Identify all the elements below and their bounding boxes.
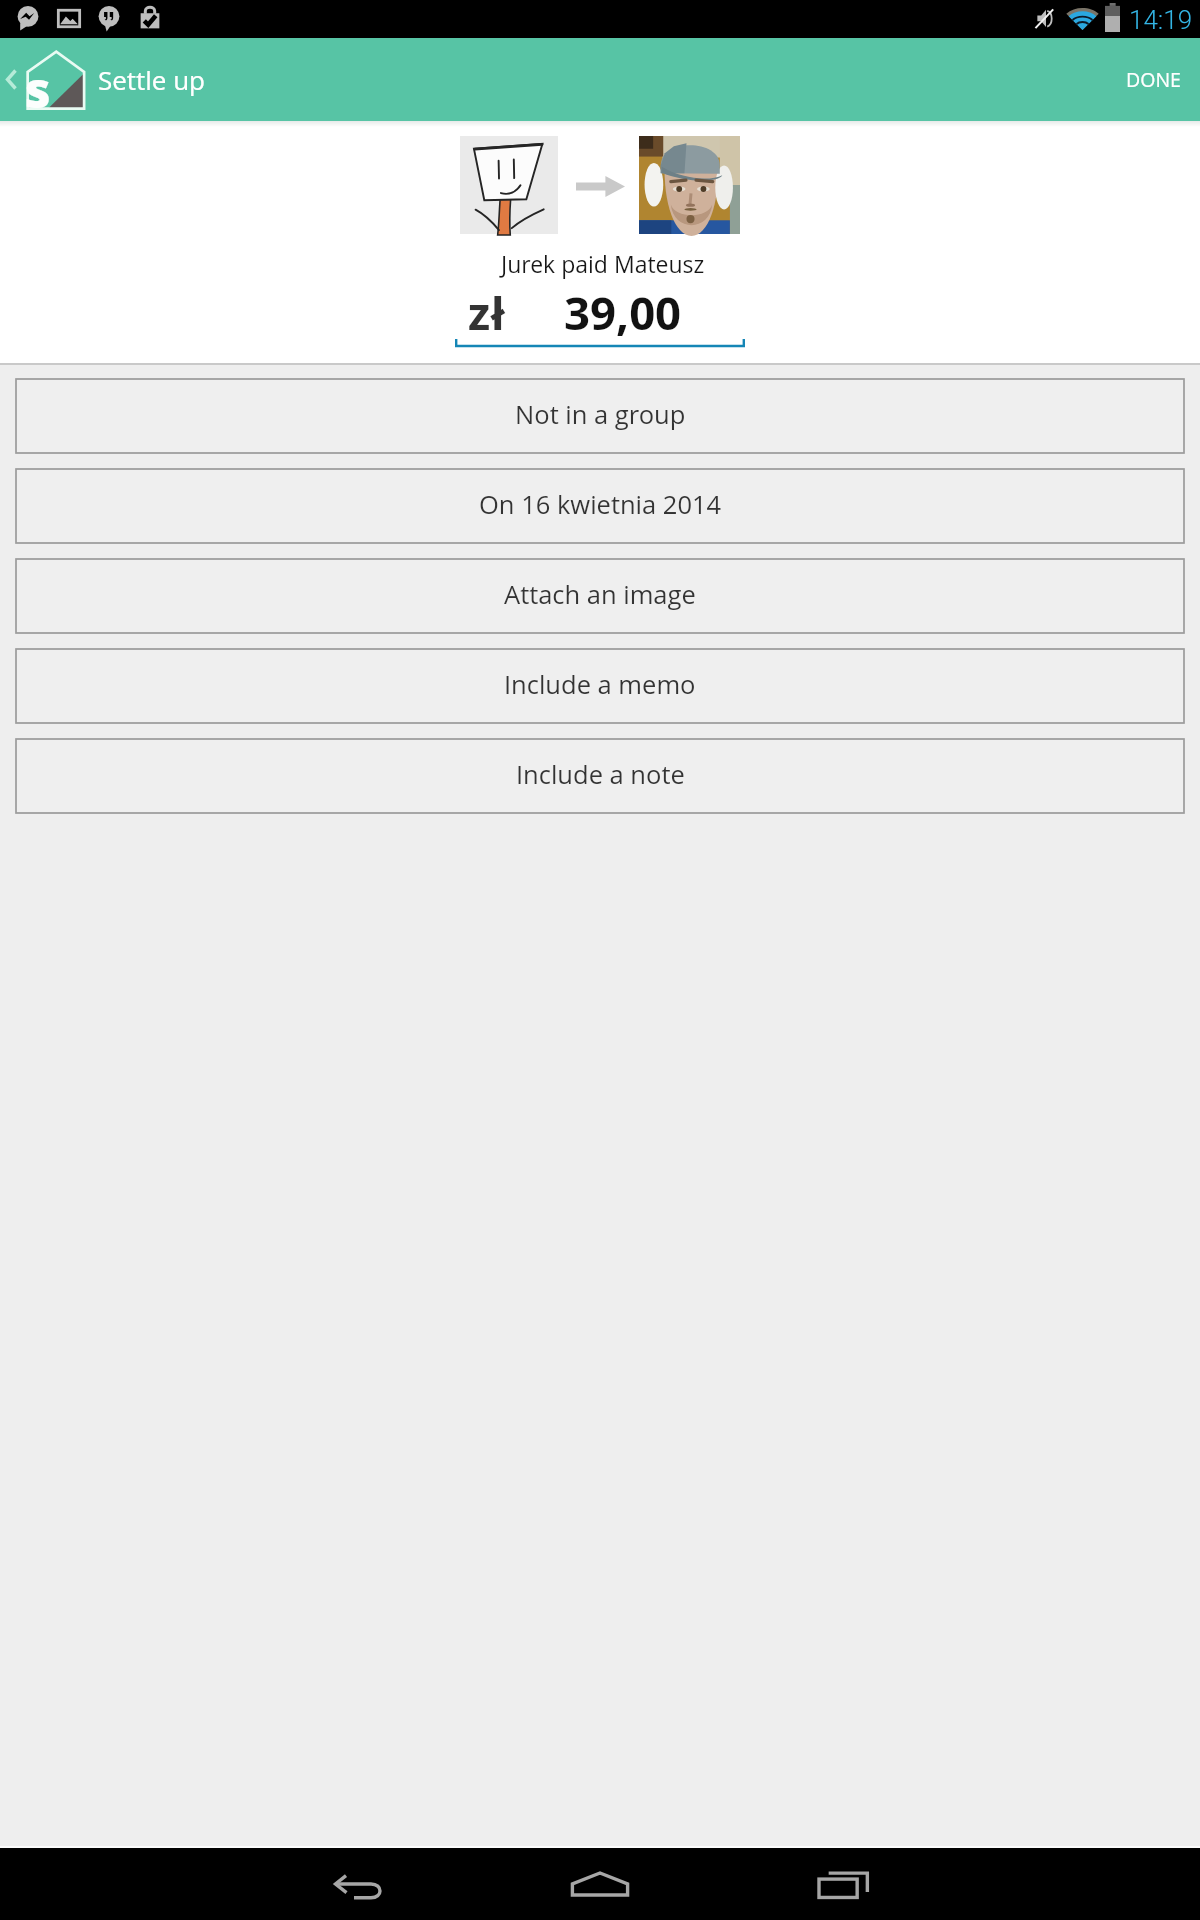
button[interactable]: Attach an image bbox=[16, 559, 1184, 633]
staticText: Include a note bbox=[516, 757, 685, 792]
staticText: zł bbox=[468, 281, 506, 343]
button[interactable]: Include a note bbox=[16, 739, 1184, 813]
button[interactable]: Back bbox=[282, 1848, 432, 1920]
staticText: On 16 kwietnia 2014 bbox=[479, 487, 722, 522]
button[interactable]: Navigate up bbox=[0, 38, 85, 121]
button[interactable]: Recent apps bbox=[768, 1848, 918, 1920]
button[interactable]: Home bbox=[525, 1848, 675, 1920]
staticText: Settle up bbox=[98, 62, 206, 97]
button[interactable]: DONE bbox=[1104, 38, 1200, 121]
staticText: DONE bbox=[1126, 66, 1181, 93]
staticText: Jurek paid Mateusz bbox=[501, 248, 705, 279]
staticText: Include a memo bbox=[504, 667, 696, 702]
button[interactable]: Include a memo bbox=[16, 649, 1184, 723]
staticText: Not in a group bbox=[515, 397, 686, 432]
button[interactable]: On 16 kwietnia 2014 bbox=[16, 469, 1184, 543]
button[interactable]: Not in a group bbox=[16, 379, 1184, 453]
staticText: s bbox=[24, 55, 51, 113]
staticText: 14:19 bbox=[1129, 5, 1193, 35]
staticText: Attach an image bbox=[504, 577, 696, 612]
staticText: 39,00 bbox=[564, 281, 682, 343]
